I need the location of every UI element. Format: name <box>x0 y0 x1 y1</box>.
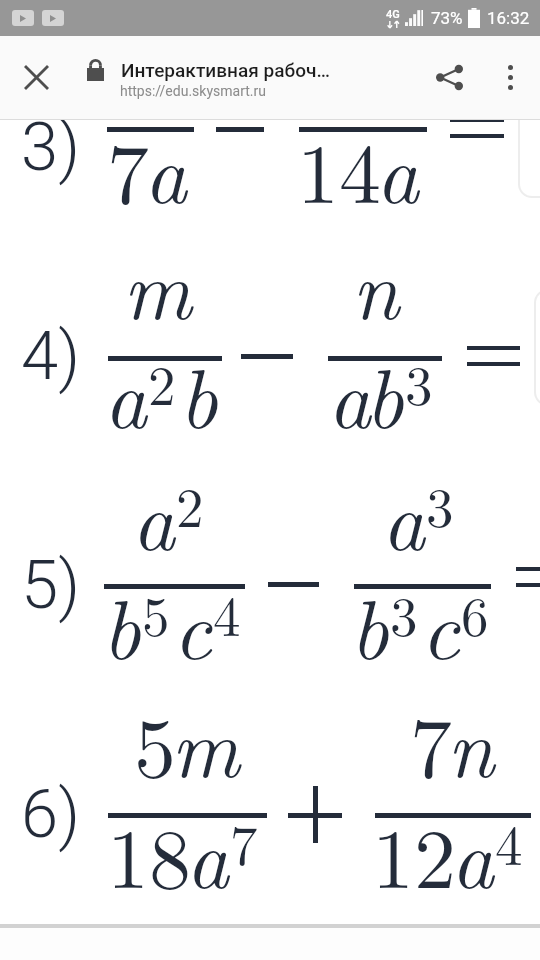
staticText: 6) <box>21 775 81 854</box>
staticText: 2 <box>148 343 176 421</box>
staticText: 73% <box>431 8 463 28</box>
staticText: 18 <box>107 793 192 912</box>
staticText: c <box>421 564 460 683</box>
staticText: a <box>328 333 371 452</box>
staticText: Интерактивная рабоч… <box>121 59 330 81</box>
staticText: 16:32 <box>487 8 530 28</box>
staticText: n <box>447 682 495 801</box>
staticText: a <box>144 108 187 227</box>
button[interactable]: More options <box>480 36 540 119</box>
staticText: 2 <box>176 465 204 543</box>
staticText: 3 <box>405 343 433 421</box>
staticText: https://edu.skysmart.ru <box>120 83 266 99</box>
staticText: 7 <box>230 803 258 881</box>
staticText: a <box>186 793 229 912</box>
staticText: a <box>451 793 494 912</box>
staticText: 3 <box>390 574 418 652</box>
staticText: 12 <box>372 793 457 912</box>
button[interactable]: Share <box>418 36 480 119</box>
staticText: 3) <box>21 108 81 187</box>
staticText: 5) <box>21 546 81 625</box>
button[interactable]: Close <box>0 36 72 119</box>
staticText: a <box>132 455 175 574</box>
staticText: 4 <box>213 574 241 652</box>
staticText: n <box>352 224 400 343</box>
staticText: a <box>376 108 419 227</box>
staticText: a <box>104 333 147 452</box>
staticText: 7 <box>410 682 453 801</box>
staticText: 5 <box>142 574 170 652</box>
staticText: 6 <box>461 574 489 652</box>
staticText: a <box>382 455 425 574</box>
staticText: 4 <box>495 803 523 881</box>
staticText: 4G <box>386 8 400 21</box>
staticText: 4) <box>21 317 81 396</box>
staticText: b <box>365 333 404 452</box>
staticText: m <box>171 682 240 801</box>
staticText: 3 <box>426 465 454 543</box>
staticText: c <box>173 564 212 683</box>
staticText: b <box>179 333 218 452</box>
staticText: 7 <box>107 108 150 227</box>
staticText: 14 <box>297 108 382 227</box>
staticText: b <box>102 564 141 683</box>
staticText: b <box>350 564 389 683</box>
staticText: m <box>123 224 192 343</box>
staticText: 5 <box>134 682 177 801</box>
